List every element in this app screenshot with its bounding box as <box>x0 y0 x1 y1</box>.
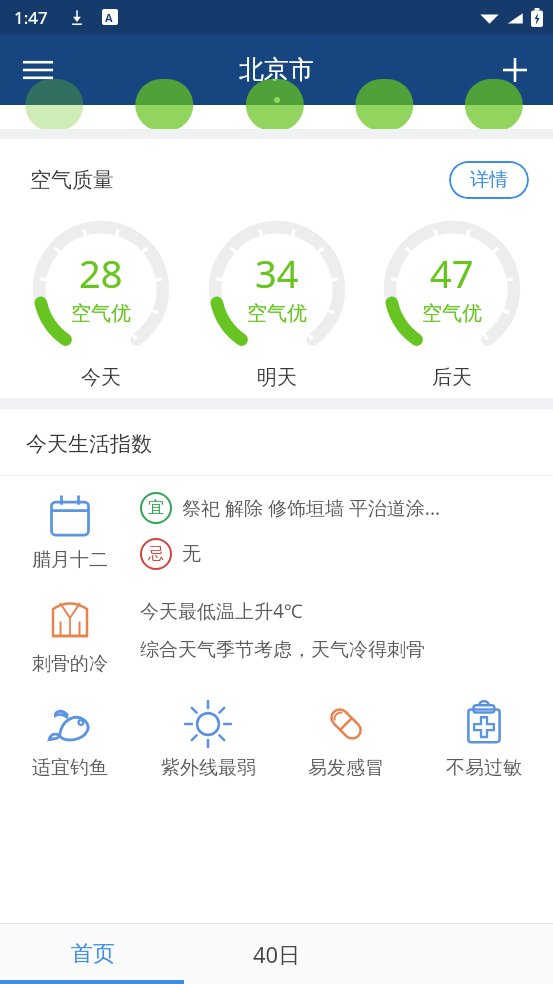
staticText: 空气优 <box>71 301 131 326</box>
button[interactable]: 40日 <box>185 924 369 984</box>
staticText: 今天 <box>81 365 121 390</box>
staticText: 空气质量 <box>30 167 114 193</box>
staticText: 28 <box>79 247 123 299</box>
button[interactable]: 首页 <box>0 924 185 984</box>
button[interactable]: 刺骨的冷 <box>0 580 553 682</box>
staticText: 综合天气季节考虑，天气冷得刺骨 <box>140 638 425 662</box>
staticText: 适宜钓鱼 <box>32 756 108 780</box>
staticText: 北京市 <box>239 54 314 85</box>
staticText: 今天最低温上升4℃ <box>140 598 303 624</box>
button[interactable]: 易发感冒 <box>277 694 415 784</box>
button[interactable]: 详情 <box>449 161 529 199</box>
staticText: 详情 <box>470 168 508 192</box>
staticText: 空气优 <box>422 301 482 326</box>
button[interactable]: 腊月十二 <box>0 476 553 580</box>
staticText: 40日 <box>253 939 301 969</box>
staticText: 祭祀 解除 修饰垣墙 平治道涂... <box>182 495 441 521</box>
staticText: 首页 <box>71 940 115 968</box>
staticText: 今天生活指数 <box>26 431 152 457</box>
button[interactable]: 不易过敏 <box>415 694 553 784</box>
button[interactable]: 紫外线最弱 <box>139 694 277 784</box>
staticText: 宜 <box>148 498 164 518</box>
staticText: A <box>105 10 113 25</box>
staticText: 47 <box>430 247 474 299</box>
button[interactable]: 适宜钓鱼 <box>0 694 139 784</box>
staticText: 刺骨的冷 <box>32 652 108 676</box>
button[interactable]: Menu <box>12 44 64 96</box>
staticText: 易发感冒 <box>308 756 384 780</box>
staticText: 明天 <box>257 365 297 390</box>
staticText: 34 <box>255 247 299 299</box>
button[interactable]: Add city <box>489 44 541 96</box>
staticText: 不易过敏 <box>446 756 522 780</box>
staticText: 忌 <box>148 544 164 564</box>
staticText: 后天 <box>432 365 472 390</box>
staticText: 紫外线最弱 <box>161 756 256 780</box>
staticText: 空气优 <box>247 301 307 326</box>
staticText: 1:47 <box>14 6 48 29</box>
staticText: 无 <box>182 542 201 566</box>
staticText: 腊月十二 <box>32 548 108 572</box>
